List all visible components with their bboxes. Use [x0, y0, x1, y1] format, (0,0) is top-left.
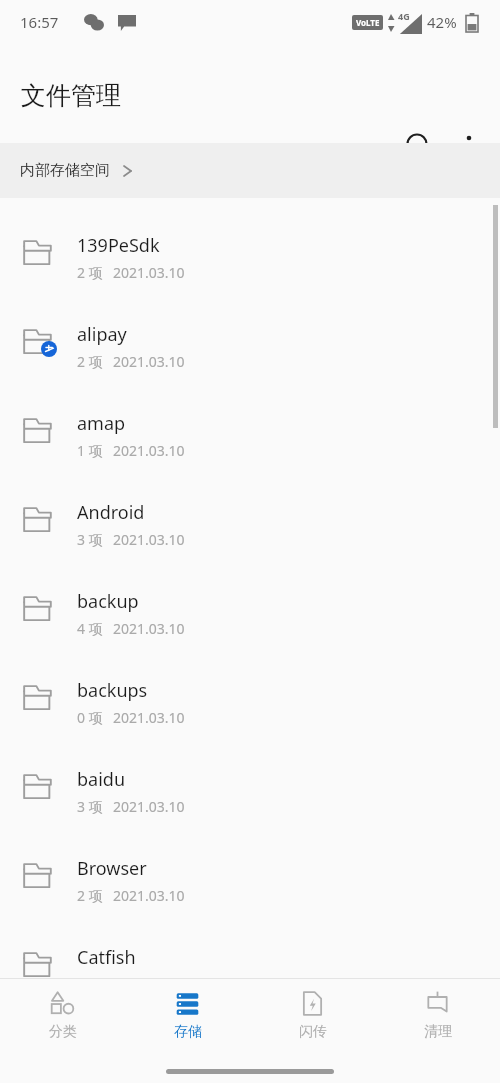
- button[interactable]: alipay: [0, 301, 500, 390]
- staticText: Catfish: [77, 945, 136, 970]
- staticText: 2021.03.10: [113, 263, 185, 282]
- button[interactable]: 闪传: [250, 979, 375, 1059]
- staticText: 3 项: [77, 797, 103, 816]
- staticText: 0 项: [77, 708, 103, 727]
- button[interactable]: 存储: [125, 979, 250, 1059]
- staticText: 2021.03.10: [113, 441, 185, 460]
- staticText: Browser: [77, 856, 147, 881]
- button[interactable]: Search: [396, 123, 442, 169]
- button[interactable]: baidu: [0, 746, 500, 835]
- staticText: Android: [77, 500, 145, 525]
- staticText: 2 项: [77, 886, 103, 905]
- staticText: 2021.03.10: [113, 530, 185, 549]
- button[interactable]: backup: [0, 568, 500, 657]
- staticText: 16:57: [20, 12, 59, 32]
- staticText: 2021.03.10: [113, 708, 185, 727]
- staticText: 2021.03.10: [113, 352, 185, 371]
- button[interactable]: 清理: [375, 979, 500, 1059]
- staticText: amap: [77, 411, 126, 436]
- staticText: 内部存储空间: [20, 161, 110, 180]
- staticText: 1 项: [77, 441, 103, 460]
- staticText: 文件管理: [21, 80, 121, 111]
- staticText: 分类: [49, 1023, 77, 1041]
- staticText: 清理: [424, 1023, 452, 1041]
- staticText: 3 项: [77, 530, 103, 549]
- staticText: backup: [77, 589, 139, 614]
- button[interactable]: 分类: [0, 979, 125, 1059]
- staticText: 2 项: [77, 352, 103, 371]
- staticText: 存储: [174, 1023, 202, 1041]
- staticText: 139PeSdk: [77, 233, 160, 258]
- staticText: 42%: [427, 12, 457, 32]
- staticText: 2 项: [77, 263, 103, 282]
- staticText: 2021.03.10: [113, 886, 185, 905]
- button[interactable]: 139PeSdk: [0, 212, 500, 301]
- button[interactable]: Browser: [0, 835, 500, 924]
- staticText: 闪传: [299, 1023, 327, 1041]
- staticText: 2021.03.10: [113, 797, 185, 816]
- staticText: 4G: [398, 10, 410, 22]
- button[interactable]: backups: [0, 657, 500, 746]
- button[interactable]: 内部存储空间: [16, 155, 138, 186]
- button[interactable]: More options: [446, 123, 492, 169]
- staticText: 4 项: [77, 619, 103, 638]
- staticText: baidu: [77, 767, 126, 792]
- button[interactable]: amap: [0, 390, 500, 479]
- button[interactable]: Android: [0, 479, 500, 568]
- button[interactable]: Catfish: [0, 924, 500, 978]
- staticText: VoLTE: [356, 17, 380, 28]
- staticText: backups: [77, 678, 148, 703]
- staticText: 2021.03.10: [113, 619, 185, 638]
- staticText: alipay: [77, 322, 127, 347]
